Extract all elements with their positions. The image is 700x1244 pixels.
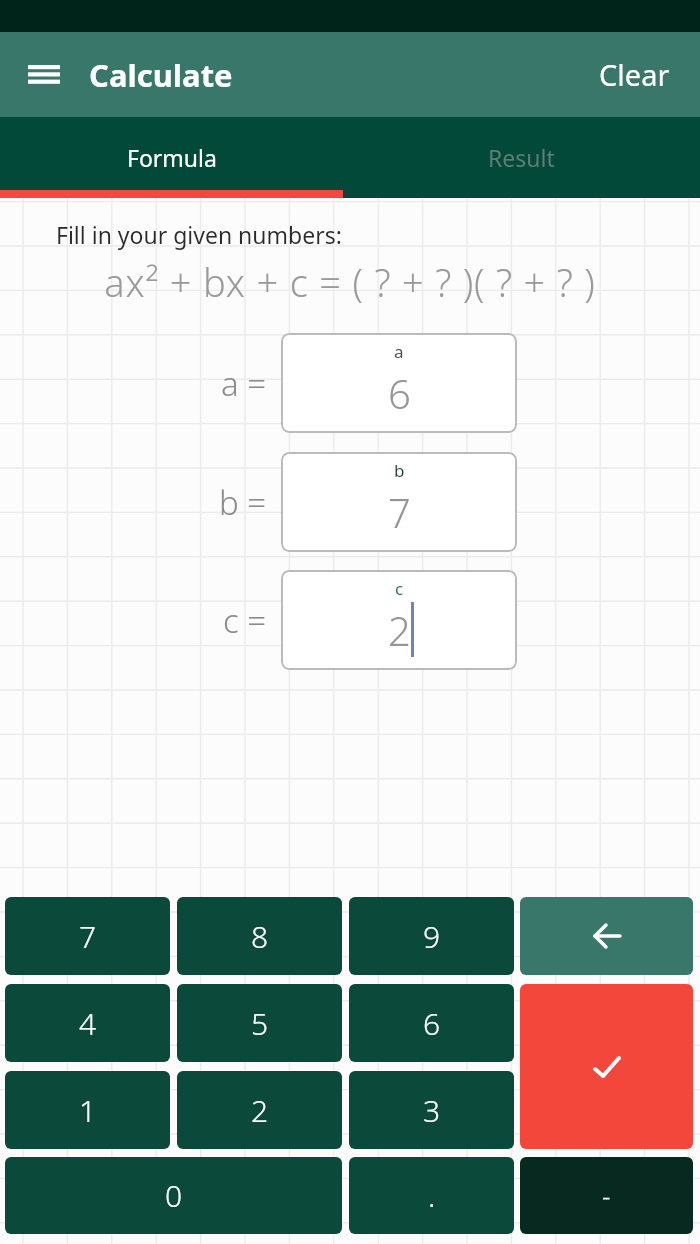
button[interactable]: 9 [349,897,514,975]
button[interactable]: 2 [177,1071,342,1149]
button[interactable]: 4 [5,984,170,1062]
button[interactable] [520,984,693,1149]
staticText: 2 [251,1090,269,1131]
staticText: c = [223,598,267,643]
button[interactable]: a [281,333,517,433]
staticText: Clear [599,55,670,94]
button[interactable]: - [520,1157,693,1234]
staticText: Formula [127,142,217,173]
staticText: c [395,577,404,600]
button[interactable] [28,65,60,84]
staticText: 8 [251,916,269,957]
staticText: 6 [423,1003,441,1044]
button[interactable]: Clear [599,55,670,94]
staticText: 5 [251,1003,269,1044]
button[interactable] [520,897,693,975]
button[interactable]: Result [343,117,700,198]
staticText: b [394,459,405,482]
button[interactable]: Formula [0,117,343,198]
staticText: a = [221,361,267,406]
staticText: 3 [423,1090,441,1131]
staticText: . [428,1175,436,1216]
button[interactable]: . [349,1157,514,1234]
button[interactable]: 1 [5,1071,170,1149]
staticText: 9 [423,916,441,957]
staticText: - [602,1178,611,1213]
staticText: a [394,340,404,363]
button[interactable]: c [281,570,517,670]
button[interactable]: 5 [177,984,342,1062]
staticText: Result [488,142,555,173]
button[interactable]: 8 [177,897,342,975]
staticText: Fill in your given numbers: [56,219,342,250]
button[interactable]: 7 [5,897,170,975]
button[interactable]: 6 [349,984,514,1062]
staticText: 1 [79,1090,97,1131]
staticText: ax² + bx + c = ( ? + ? )( ? + ? ) [0,256,700,308]
staticText: 2 [388,603,411,657]
button[interactable]: b [281,452,517,552]
staticText: Calculate [89,54,233,96]
button[interactable]: 0 [5,1157,342,1234]
staticText: b = [219,480,267,525]
staticText: 4 [79,1003,97,1044]
staticText: 7 [388,485,411,539]
staticText: 0 [165,1175,183,1216]
staticText: 7 [79,916,97,957]
button[interactable]: 3 [349,1071,514,1149]
staticText: 6 [388,366,411,420]
